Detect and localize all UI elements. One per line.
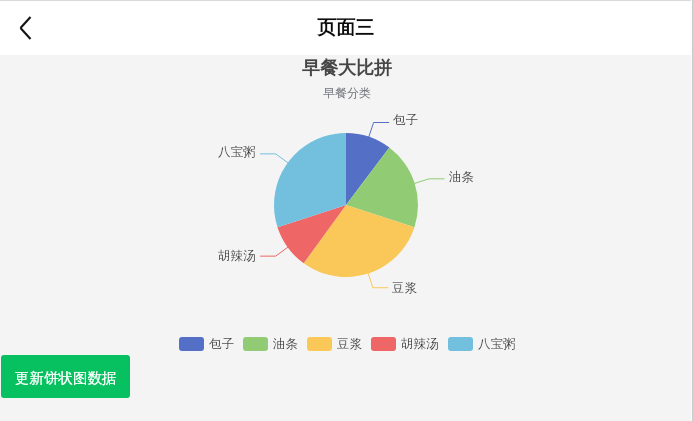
- staticText: 胡辣汤: [401, 336, 439, 352]
- staticText: 早餐大比拼: [302, 57, 392, 80]
- staticText: 豆浆: [337, 336, 362, 352]
- staticText: 油条: [449, 169, 474, 185]
- staticText: 包子: [393, 112, 418, 128]
- staticText: 胡辣汤: [218, 248, 256, 264]
- button[interactable]: 八宝粥: [448, 336, 516, 352]
- staticText: 八宝粥: [218, 144, 256, 160]
- staticText: 更新饼状图数据: [15, 369, 117, 387]
- button[interactable]: Back: [7, 10, 43, 46]
- staticText: 包子: [209, 336, 234, 352]
- button[interactable]: 更新饼状图数据: [1, 355, 130, 398]
- button[interactable]: 豆浆: [307, 336, 362, 352]
- staticText: 八宝粥: [478, 336, 516, 352]
- staticText: 页面三: [317, 16, 374, 40]
- staticText: 豆浆: [392, 280, 417, 296]
- staticText: 油条: [273, 336, 298, 352]
- button[interactable]: 包子: [179, 336, 234, 352]
- button[interactable]: 油条: [243, 336, 298, 352]
- button[interactable]: 胡辣汤: [371, 336, 439, 352]
- staticText: 早餐分类: [323, 85, 371, 100]
